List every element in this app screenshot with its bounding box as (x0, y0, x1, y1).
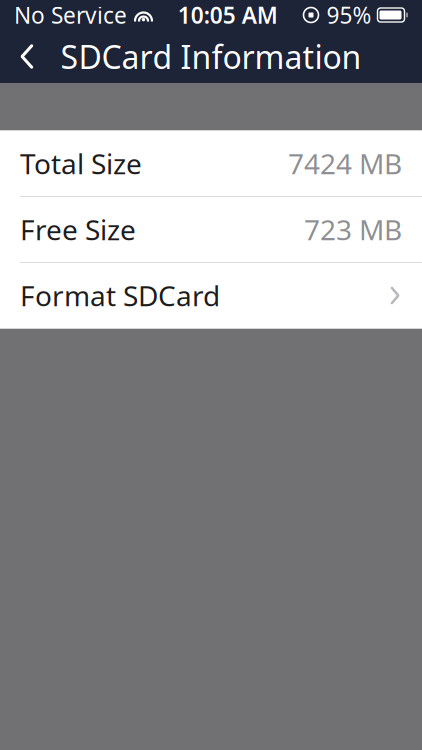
staticText: 10:05 AM (178, 0, 278, 30)
button[interactable]: Back (0, 30, 54, 83)
staticText: 7424 MB (288, 145, 402, 182)
staticText: No Service (14, 0, 127, 30)
staticText: 723 MB (304, 211, 402, 248)
staticText: 95% (326, 0, 371, 30)
staticText: SDCard Information (60, 35, 361, 78)
button[interactable]: Format SDCard (0, 263, 422, 328)
staticText: Total Size (20, 145, 142, 182)
staticText: Format SDCard (20, 277, 220, 314)
staticText: Free Size (20, 211, 136, 248)
